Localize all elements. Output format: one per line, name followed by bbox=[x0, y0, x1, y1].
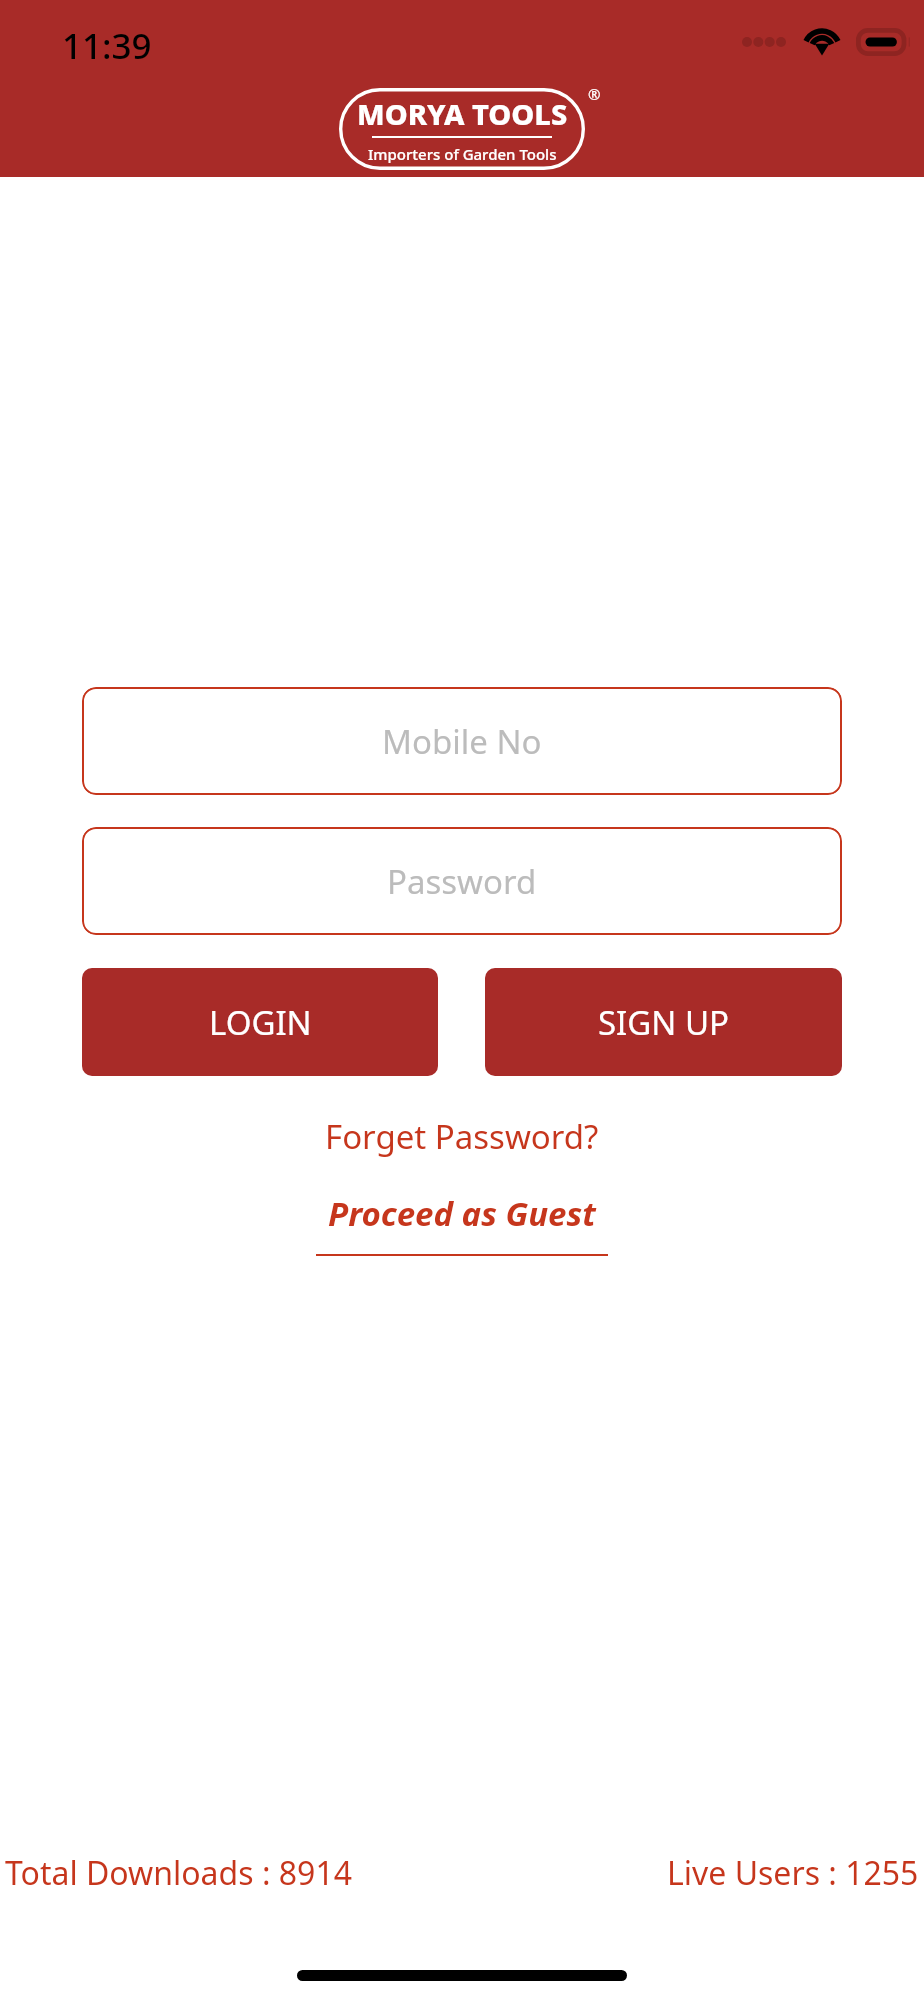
button[interactable]: Proceed as Guest bbox=[312, 1187, 612, 1256]
staticText: Password bbox=[387, 859, 537, 904]
staticText: Mobile No bbox=[382, 719, 542, 764]
button[interactable]: Password bbox=[82, 827, 842, 935]
button[interactable]: Mobile No bbox=[82, 687, 842, 795]
button[interactable]: Total Downloads : 8914 bbox=[5, 1851, 353, 1895]
button[interactable]: Live Users : 1255 bbox=[667, 1851, 919, 1895]
button[interactable]: LOGIN bbox=[82, 968, 438, 1076]
button[interactable]: SIGN UP bbox=[485, 968, 842, 1076]
staticText: MORYA TOOLS bbox=[357, 94, 568, 133]
staticText: 11:39 bbox=[62, 22, 152, 70]
staticText: Proceed as Guest bbox=[328, 1191, 596, 1236]
staticText: LOGIN bbox=[209, 1000, 312, 1045]
staticText: Importers of Garden Tools bbox=[368, 144, 557, 164]
other: Home indicator bbox=[297, 1970, 627, 1981]
staticText: ® bbox=[588, 84, 601, 104]
button[interactable]: Forget Password? bbox=[313, 1106, 611, 1167]
staticText: SIGN UP bbox=[598, 1000, 730, 1045]
